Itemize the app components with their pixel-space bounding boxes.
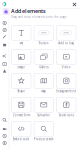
button[interactable]: Instagram feed <box>54 73 78 94</box>
button[interactable]: Gallery <box>31 49 56 70</box>
button[interactable]: Subscribe <box>31 97 56 118</box>
button[interactable]: Tool 2 <box>2 28 7 32</box>
button[interactable]: Image <box>9 49 33 70</box>
button[interactable]: Text <box>9 25 33 46</box>
button[interactable]: Contact form <box>9 97 33 118</box>
staticText: Social icons <box>59 113 74 117</box>
button[interactable]: Video <box>54 49 78 70</box>
button[interactable]: Tool 3 <box>2 35 7 39</box>
button[interactable]: Embed code <box>9 121 33 142</box>
button[interactable]: Tool 6 <box>2 62 7 66</box>
button[interactable]: Tool 1 <box>2 21 7 25</box>
button[interactable]: f <box>54 97 78 118</box>
button[interactable]: Tool 7 <box>2 69 7 73</box>
staticText: Product search <box>34 137 54 141</box>
staticText: Subscribe <box>37 113 50 117</box>
staticText: Gallery <box>39 65 48 69</box>
button[interactable]: Shape <box>9 73 33 94</box>
button[interactable]: Map <box>31 73 56 94</box>
button[interactable]: Home <box>1 1 7 7</box>
button[interactable]: Product search <box>31 121 56 142</box>
staticText: Text <box>19 41 23 45</box>
staticText: Contact form <box>13 113 30 117</box>
button[interactable]: Option 4 <box>2 141 7 145</box>
button[interactable]: Option 3 <box>2 134 7 138</box>
staticText: Add elements <box>11 7 46 14</box>
staticText: Embed code <box>13 137 30 141</box>
staticText: Drag and drop elements onto the page <box>11 15 67 19</box>
staticText: Map <box>41 89 46 93</box>
button[interactable]: Close <box>72 2 77 7</box>
button[interactable]: Add to bag <box>54 25 78 46</box>
button[interactable]: Option 2 <box>2 127 7 131</box>
staticText: f <box>65 101 67 108</box>
staticText: Image <box>17 65 25 69</box>
staticText: Video <box>62 65 71 69</box>
button[interactable]: Tool 4 <box>2 42 7 47</box>
staticText: Add to bag <box>58 41 74 45</box>
button[interactable]: Button <box>31 25 56 46</box>
button[interactable]: Tool 5 <box>2 54 7 58</box>
staticText: Shape <box>17 89 25 93</box>
button[interactable]: Option 1 <box>2 118 7 122</box>
staticText: Instagram feed <box>56 89 76 93</box>
staticText: Button <box>39 41 49 45</box>
